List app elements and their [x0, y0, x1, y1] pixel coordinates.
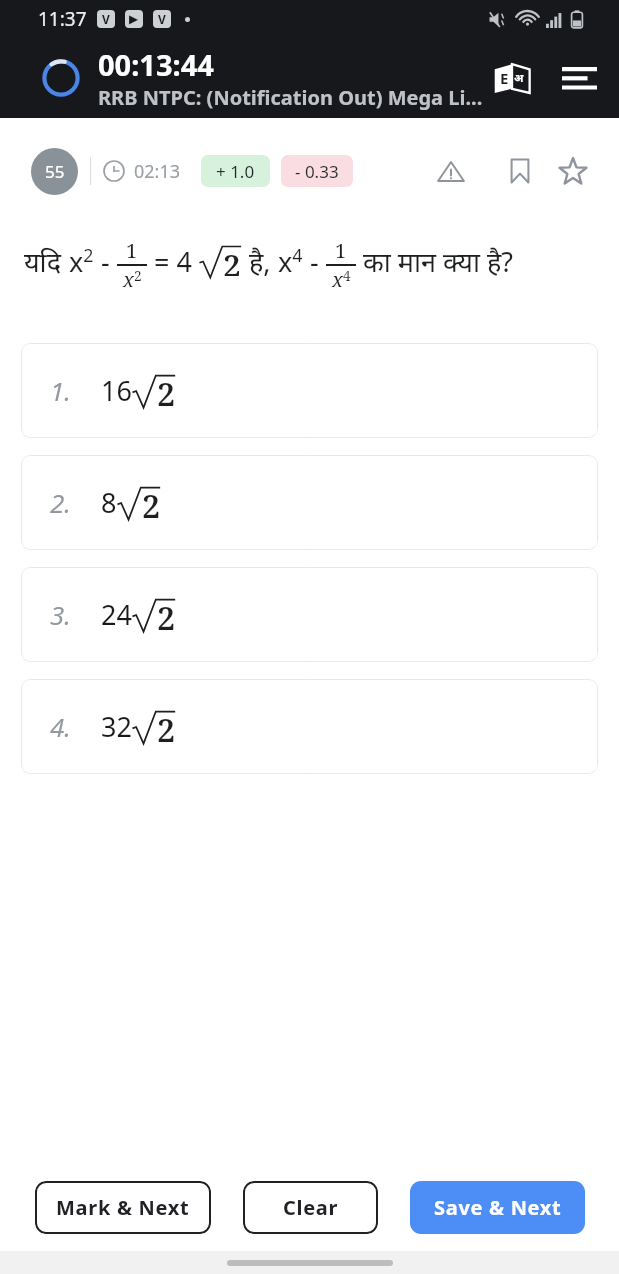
staticText: V — [158, 11, 166, 27]
staticText: 2. — [50, 485, 71, 520]
staticText: x2 — [69, 243, 94, 280]
staticText: 1. — [50, 373, 71, 408]
button[interactable]: 4. — [21, 679, 598, 774]
staticText: 11:37 — [38, 6, 87, 32]
button[interactable]: 1. — [21, 343, 598, 438]
staticText: x2 — [123, 266, 142, 293]
staticText: 2 — [142, 484, 161, 518]
button[interactable]: 2. — [21, 455, 598, 550]
staticText: 2 — [157, 596, 176, 630]
button[interactable]: 3. — [21, 567, 598, 662]
button[interactable]: Bookmark — [498, 149, 542, 193]
staticText: - — [303, 243, 326, 280]
staticText: ▶ — [129, 12, 139, 26]
staticText: 24 — [101, 596, 132, 633]
staticText: का मान क्या है? — [356, 243, 514, 280]
staticText: Clear — [283, 1194, 339, 1221]
staticText: 2 — [223, 243, 241, 276]
staticText: Save & Next — [434, 1194, 562, 1221]
staticText: = 4 — [147, 243, 199, 280]
staticText: 00:13:44 — [98, 45, 214, 84]
staticText: 2 — [157, 372, 176, 406]
staticText: 3. — [50, 597, 71, 632]
button[interactable]: Favourite — [551, 149, 595, 193]
button[interactable]: Report — [429, 149, 473, 193]
staticText: यदि — [24, 243, 69, 280]
staticText: x4 — [278, 243, 303, 280]
staticText: 8 — [101, 484, 117, 521]
staticText: 32 — [101, 708, 132, 745]
staticText: - 0.33 — [295, 160, 339, 183]
staticText: 1 — [335, 237, 347, 264]
staticText: 02:13 — [134, 159, 181, 184]
button[interactable]: Clear — [243, 1181, 378, 1234]
button[interactable]: Language — [489, 56, 535, 100]
staticText: 55 — [45, 160, 65, 183]
staticText: 1 — [126, 237, 138, 264]
button[interactable]: Save & Next — [410, 1181, 585, 1234]
staticText: E — [500, 68, 509, 88]
staticText: 2 — [157, 708, 176, 742]
staticText: RRB NTPC: (Notification Out) Mega Li... — [98, 84, 483, 111]
staticText: V — [102, 11, 110, 27]
button[interactable]: Menu — [557, 56, 601, 100]
button[interactable]: Mark & Next — [35, 1181, 211, 1234]
staticText: Mark & Next — [56, 1194, 190, 1221]
staticText: है, — [242, 243, 278, 280]
staticText: + 1.0 — [216, 160, 255, 183]
staticText: - — [94, 243, 117, 280]
staticText: x4 — [332, 266, 351, 293]
staticText: अ — [514, 70, 524, 85]
staticText: 16 — [101, 372, 132, 409]
staticText: 4. — [50, 709, 71, 744]
